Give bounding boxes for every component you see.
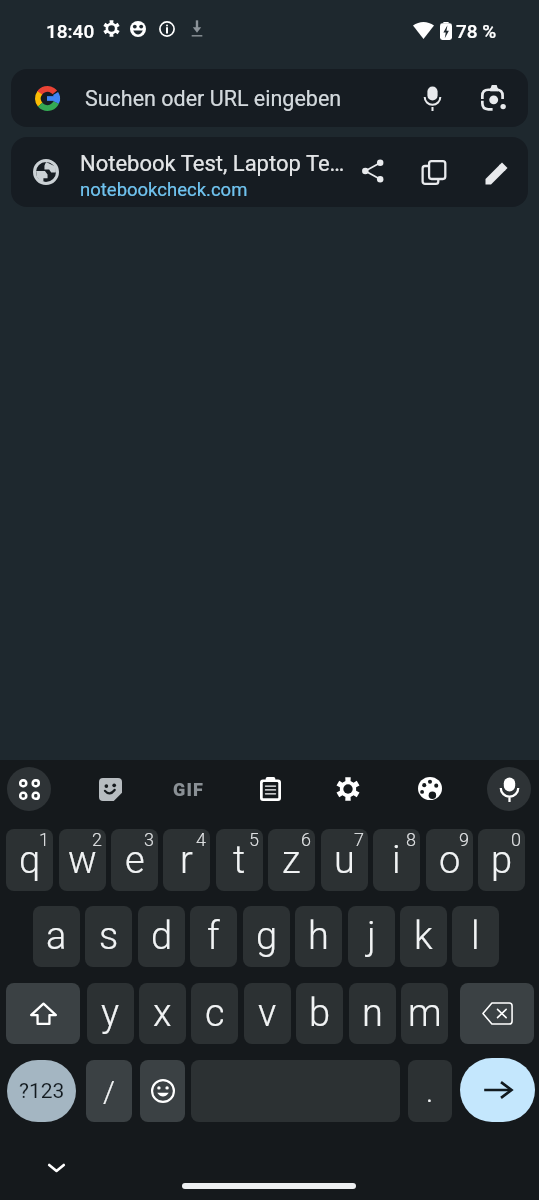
staticText: s	[99, 914, 119, 959]
button[interactable]: Hide keyboard	[40, 1152, 72, 1184]
button[interactable]: s	[85, 906, 132, 967]
button[interactable]: Enter	[460, 1058, 535, 1122]
staticText: a	[46, 914, 67, 959]
button[interactable]: Voice search	[409, 75, 455, 121]
staticText: x	[153, 991, 172, 1036]
staticText: 0	[511, 829, 521, 850]
staticText: 1	[39, 829, 49, 850]
button[interactable]: .	[408, 1060, 452, 1122]
button[interactable]: q	[6, 829, 53, 891]
button[interactable]: Google Lens	[471, 75, 517, 121]
staticText: l	[471, 914, 480, 959]
button[interactable]: c	[191, 983, 238, 1044]
button[interactable]: Symbols	[7, 767, 51, 811]
button[interactable]: u	[321, 829, 368, 891]
staticText: 5	[249, 829, 259, 850]
button[interactable]: ?123	[7, 1060, 76, 1122]
staticText: c	[205, 991, 225, 1036]
button[interactable]: Notebook Test, Laptop Te…	[11, 137, 528, 207]
button[interactable]: Backspace	[460, 983, 534, 1044]
button[interactable]: h	[295, 906, 342, 967]
staticText: b	[309, 991, 331, 1036]
button[interactable]: b	[296, 983, 343, 1044]
staticText: 2	[92, 829, 102, 850]
button[interactable]: /	[86, 1060, 132, 1122]
button[interactable]: r	[163, 829, 210, 891]
staticText: 4	[196, 829, 206, 850]
button[interactable]: g	[243, 906, 290, 967]
button[interactable]: Stickers	[88, 767, 132, 811]
staticText: 7	[354, 829, 364, 850]
button[interactable]: Copy link	[408, 146, 460, 198]
staticText: GIF	[173, 779, 205, 800]
staticText: d	[151, 914, 173, 959]
staticText: Suchen oder URL eingeben	[85, 86, 342, 111]
button[interactable]: f	[190, 906, 237, 967]
staticText: h	[308, 914, 329, 959]
button[interactable]: y	[87, 983, 134, 1044]
staticText: w	[68, 838, 97, 883]
button[interactable]: o	[426, 829, 473, 891]
button[interactable]: a	[33, 906, 80, 967]
staticText: g	[256, 914, 278, 959]
button[interactable]: Shift	[6, 983, 80, 1044]
button[interactable]: Themes	[408, 767, 452, 811]
button[interactable]: Settings	[326, 767, 370, 811]
button[interactable]: GIF	[167, 767, 211, 811]
staticText: 18:40	[46, 20, 95, 42]
staticText: j	[367, 914, 376, 959]
staticText: 6	[301, 829, 311, 850]
staticText: ?123	[19, 1079, 65, 1104]
button[interactable]: Edit	[471, 146, 523, 198]
staticText: /	[103, 1074, 115, 1109]
button[interactable]: z	[268, 829, 315, 891]
staticText: z	[282, 838, 301, 883]
button[interactable]: Suchen oder URL eingeben	[11, 69, 528, 127]
staticText: v	[258, 991, 277, 1036]
button[interactable]: p	[478, 829, 525, 891]
staticText: m	[408, 991, 442, 1036]
button[interactable]: Emoji	[140, 1060, 185, 1122]
staticText: t	[233, 838, 246, 883]
button[interactable]: l	[452, 906, 499, 967]
button[interactable]: Voice input	[487, 767, 531, 811]
staticText: f	[207, 914, 220, 959]
button[interactable]: Clipboard	[248, 767, 292, 811]
button[interactable]: v	[244, 983, 291, 1044]
staticText: notebookcheck.com	[80, 179, 248, 201]
staticText: .	[426, 1074, 434, 1109]
staticText: 8	[406, 829, 416, 850]
button[interactable]: n	[349, 983, 396, 1044]
button[interactable]: w	[59, 829, 106, 891]
button[interactable]: d	[138, 906, 185, 967]
button[interactable]: Share	[347, 146, 399, 198]
staticText: i	[392, 838, 401, 883]
button[interactable]: k	[400, 906, 447, 967]
staticText: q	[19, 838, 41, 883]
staticText: r	[180, 838, 193, 883]
staticText: 78 %	[456, 20, 497, 42]
staticText: e	[125, 838, 145, 883]
staticText: n	[362, 991, 383, 1036]
staticText: 9	[459, 829, 469, 850]
staticText: y	[101, 991, 120, 1036]
staticText: k	[414, 914, 433, 959]
staticText: 3	[144, 829, 154, 850]
button[interactable]: m	[401, 983, 448, 1044]
staticText: o	[439, 838, 461, 883]
staticText: Notebook Test, Laptop Te…	[80, 151, 345, 177]
button[interactable]: j	[348, 906, 395, 967]
staticText: u	[334, 838, 355, 883]
button[interactable]: x	[139, 983, 186, 1044]
button[interactable]: e	[111, 829, 158, 891]
staticText: p	[491, 838, 513, 883]
button[interactable]: t	[216, 829, 263, 891]
button[interactable]: i	[373, 829, 420, 891]
